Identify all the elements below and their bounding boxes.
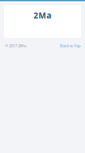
staticText: © 2017 2Ma — [5, 43, 26, 48]
staticText: Back to Top — [60, 43, 80, 48]
staticText: 2Ma — [33, 10, 51, 21]
button[interactable]: Back to Top — [60, 43, 80, 48]
button[interactable]: 2Ma — [33, 5, 51, 21]
